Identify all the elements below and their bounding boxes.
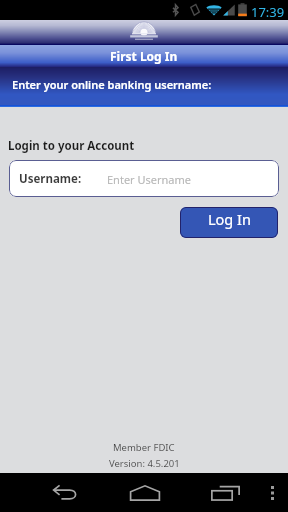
staticText: Log In bbox=[208, 209, 251, 229]
button[interactable]: Home bbox=[104, 473, 185, 512]
staticText: Version: 4.5.201 bbox=[109, 457, 180, 470]
button[interactable]: Back bbox=[23, 473, 104, 512]
staticText: Enter Username bbox=[107, 172, 192, 187]
button[interactable]: Log In bbox=[180, 207, 278, 238]
button[interactable]: Username: bbox=[9, 160, 279, 197]
staticText: Enter your online banking username: bbox=[12, 77, 212, 92]
staticText: 17:39 bbox=[251, 3, 285, 21]
button[interactable]: Recent apps bbox=[185, 473, 266, 512]
button[interactable]: More options bbox=[256, 473, 288, 512]
staticText: Username: bbox=[19, 171, 82, 187]
staticText: Login to your Account bbox=[8, 138, 135, 154]
staticText: First Log In bbox=[110, 48, 178, 64]
staticText: Member FDIC bbox=[113, 441, 175, 454]
